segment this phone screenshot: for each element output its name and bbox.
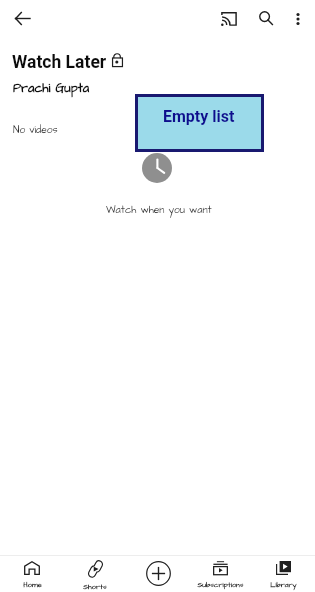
button[interactable]: Subscriptions — [189, 556, 251, 592]
staticText: No videos — [13, 123, 58, 137]
staticText: Empty list — [163, 107, 235, 126]
button[interactable]: Back — [7, 3, 37, 33]
staticText: Shorts — [83, 582, 107, 592]
staticText: Watch when you want — [106, 203, 212, 217]
button[interactable]: Cast — [213, 3, 245, 35]
staticText: Subscriptions — [197, 580, 244, 590]
button[interactable]: Shorts — [64, 556, 126, 592]
staticText: Watch Later — [12, 52, 107, 73]
staticText: Library — [270, 580, 297, 590]
button[interactable]: Create — [127, 556, 189, 592]
button[interactable]: More options — [284, 5, 312, 33]
staticText: Home — [23, 580, 42, 590]
button[interactable]: Search — [251, 3, 281, 33]
button[interactable]: Home — [1, 556, 63, 592]
staticText: Prachi Gupta — [13, 80, 90, 98]
button[interactable]: Library — [252, 556, 314, 592]
